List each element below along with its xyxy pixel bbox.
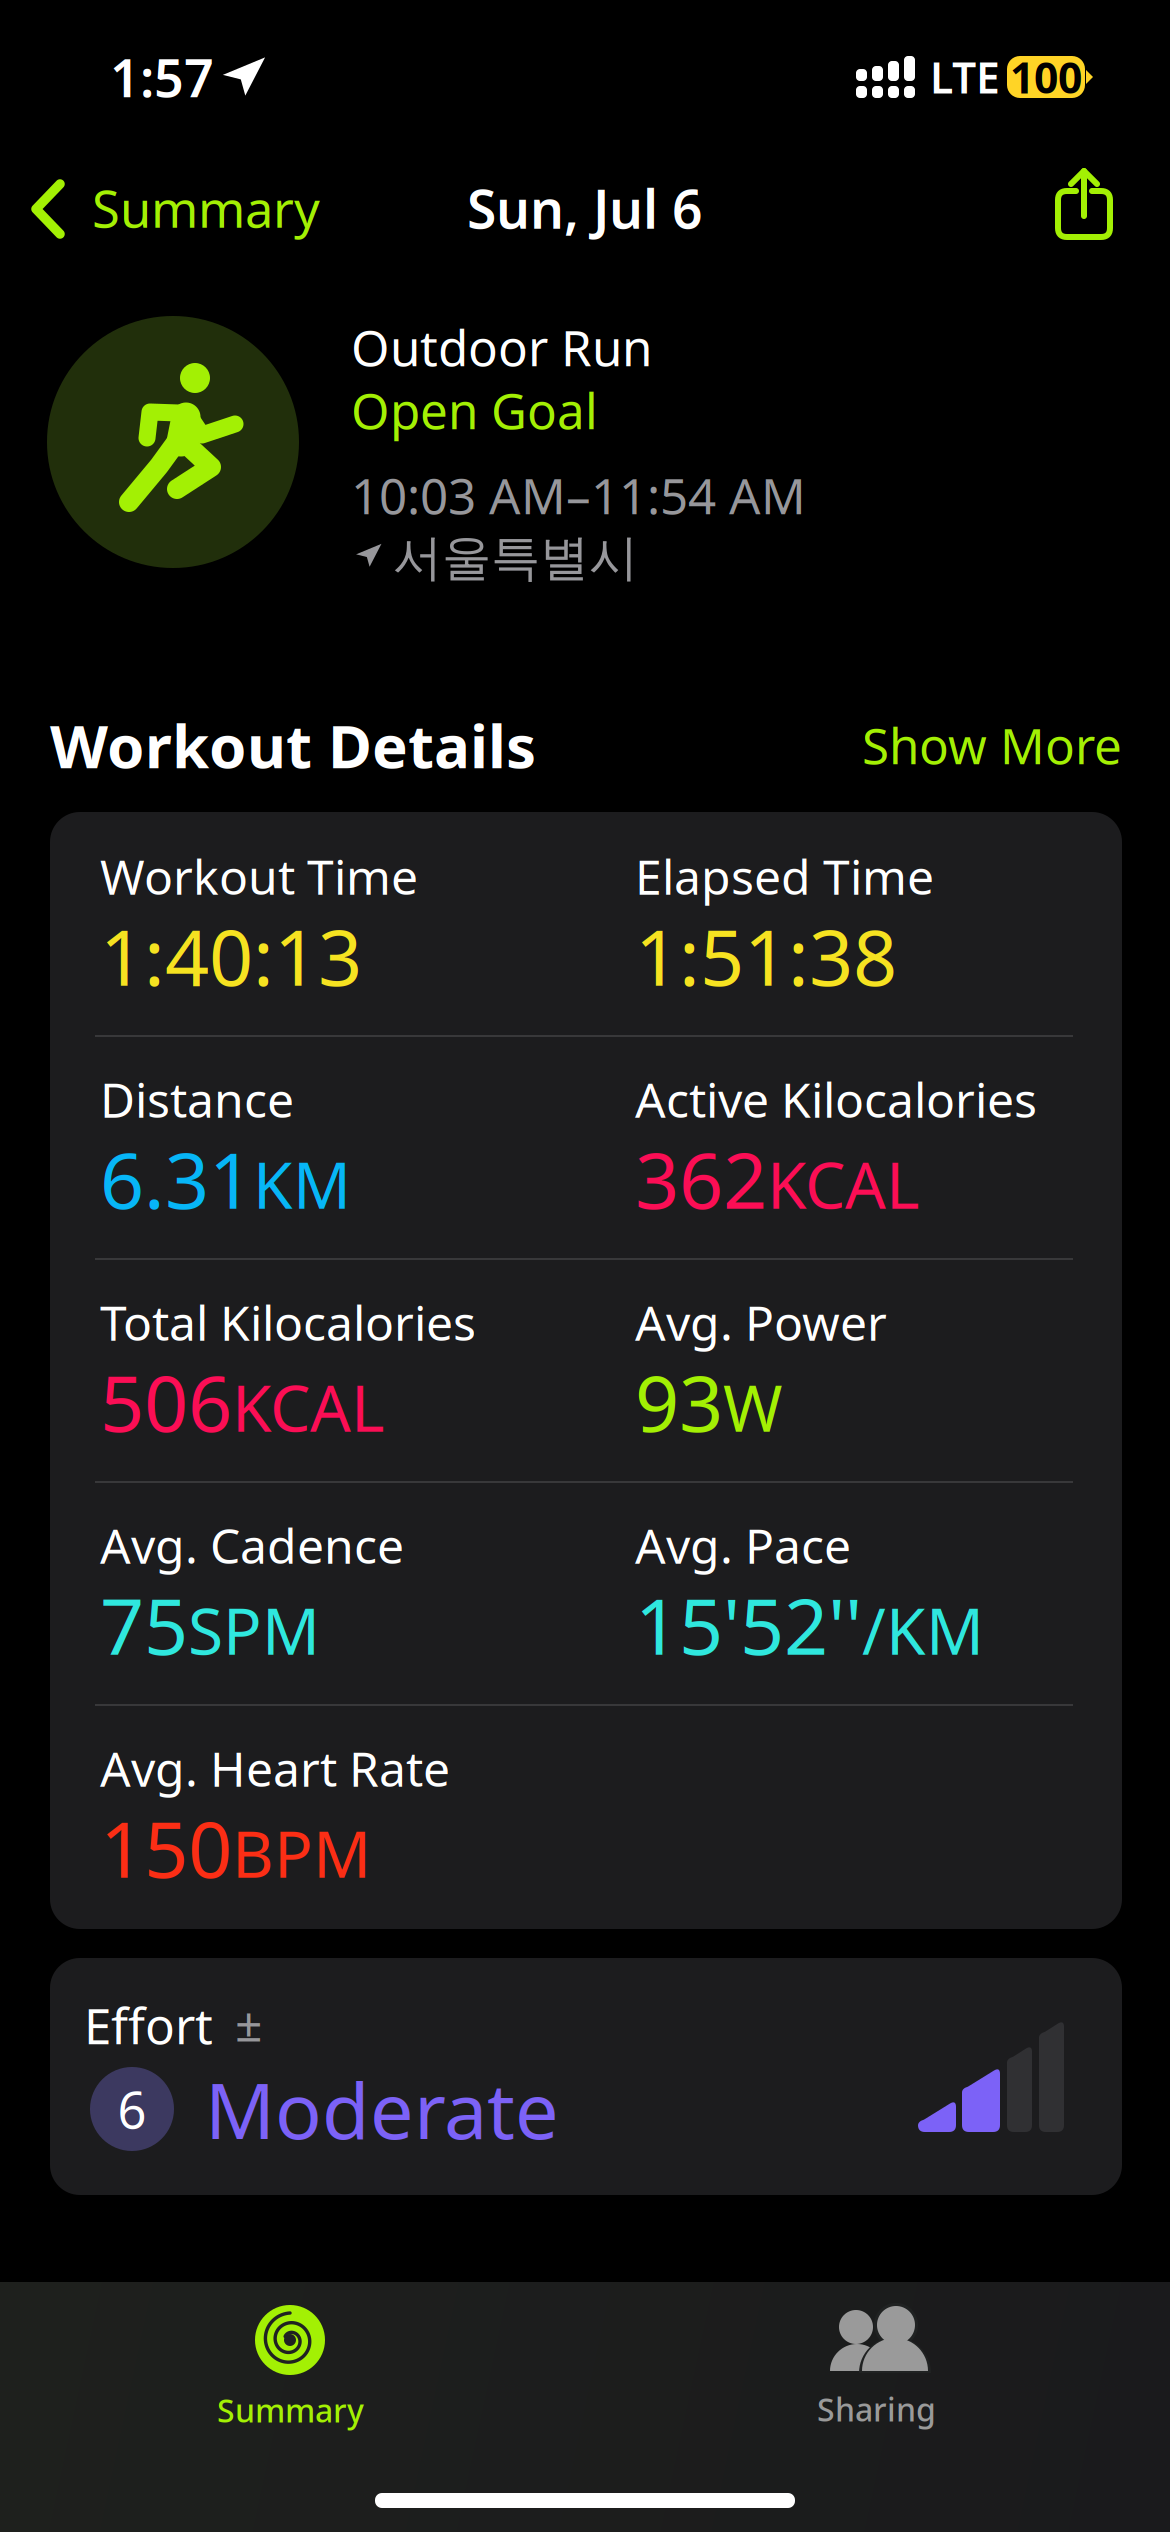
- staticText: KCAL: [232, 1364, 385, 1449]
- staticText: Avg. Cadence: [100, 1513, 404, 1577]
- staticText: 15'52'': [635, 1573, 862, 1676]
- staticText: Sun, Jul 6: [467, 173, 703, 243]
- staticText: Workout Time: [100, 844, 418, 908]
- staticText: Total Kilocalories: [100, 1290, 476, 1354]
- button[interactable]: Share: [1054, 168, 1114, 240]
- staticText: /KM: [862, 1587, 984, 1672]
- button[interactable]: Summary: [0, 2282, 585, 2457]
- staticText: 506: [100, 1350, 232, 1453]
- staticText: Avg. Pace: [635, 1513, 851, 1577]
- button[interactable]: Show More: [770, 712, 1122, 778]
- staticText: 1:57: [110, 42, 214, 112]
- staticText: Avg. Power: [635, 1290, 887, 1354]
- staticText: 150: [100, 1796, 232, 1899]
- staticText: Workout Details: [50, 705, 536, 785]
- staticText: LTE: [930, 49, 1000, 105]
- staticText: 1:51:38: [635, 904, 897, 1007]
- staticText: Sharing: [817, 2388, 936, 2430]
- staticText: 93: [635, 1350, 723, 1453]
- staticText: KCAL: [767, 1141, 920, 1226]
- staticText: 6.31: [100, 1127, 253, 1230]
- button[interactable]: Sharing: [585, 2282, 1170, 2457]
- staticText: Summary: [92, 174, 320, 242]
- staticText: Moderate: [205, 2058, 559, 2160]
- staticText: Effort: [84, 1992, 213, 2058]
- staticText: Summary: [217, 2389, 364, 2431]
- staticText: SPM: [188, 1587, 320, 1672]
- staticText: Active Kilocalories: [635, 1067, 1037, 1131]
- staticText: 10:03 AM–11:54 AM: [351, 462, 806, 528]
- staticText: 서울특별시: [393, 528, 638, 588]
- staticText: Outdoor Run: [351, 314, 652, 380]
- button[interactable]: Effort: [50, 1958, 1122, 2195]
- staticText: 100: [1010, 49, 1082, 105]
- staticText: KM: [253, 1141, 351, 1226]
- staticText: Show More: [862, 712, 1122, 778]
- staticText: ±: [235, 1991, 262, 2055]
- staticText: W: [723, 1364, 783, 1449]
- staticText: Elapsed Time: [635, 844, 934, 908]
- staticText: 1:40:13: [100, 904, 362, 1007]
- staticText: Open Goal: [351, 377, 598, 443]
- staticText: Distance: [100, 1067, 294, 1131]
- staticText: BPM: [232, 1810, 371, 1895]
- staticText: 6: [117, 2075, 146, 2143]
- staticText: 362: [635, 1127, 767, 1230]
- staticText: 75: [100, 1573, 188, 1676]
- staticText: Avg. Heart Rate: [100, 1736, 450, 1800]
- button[interactable]: Back to Summary: [24, 168, 354, 248]
